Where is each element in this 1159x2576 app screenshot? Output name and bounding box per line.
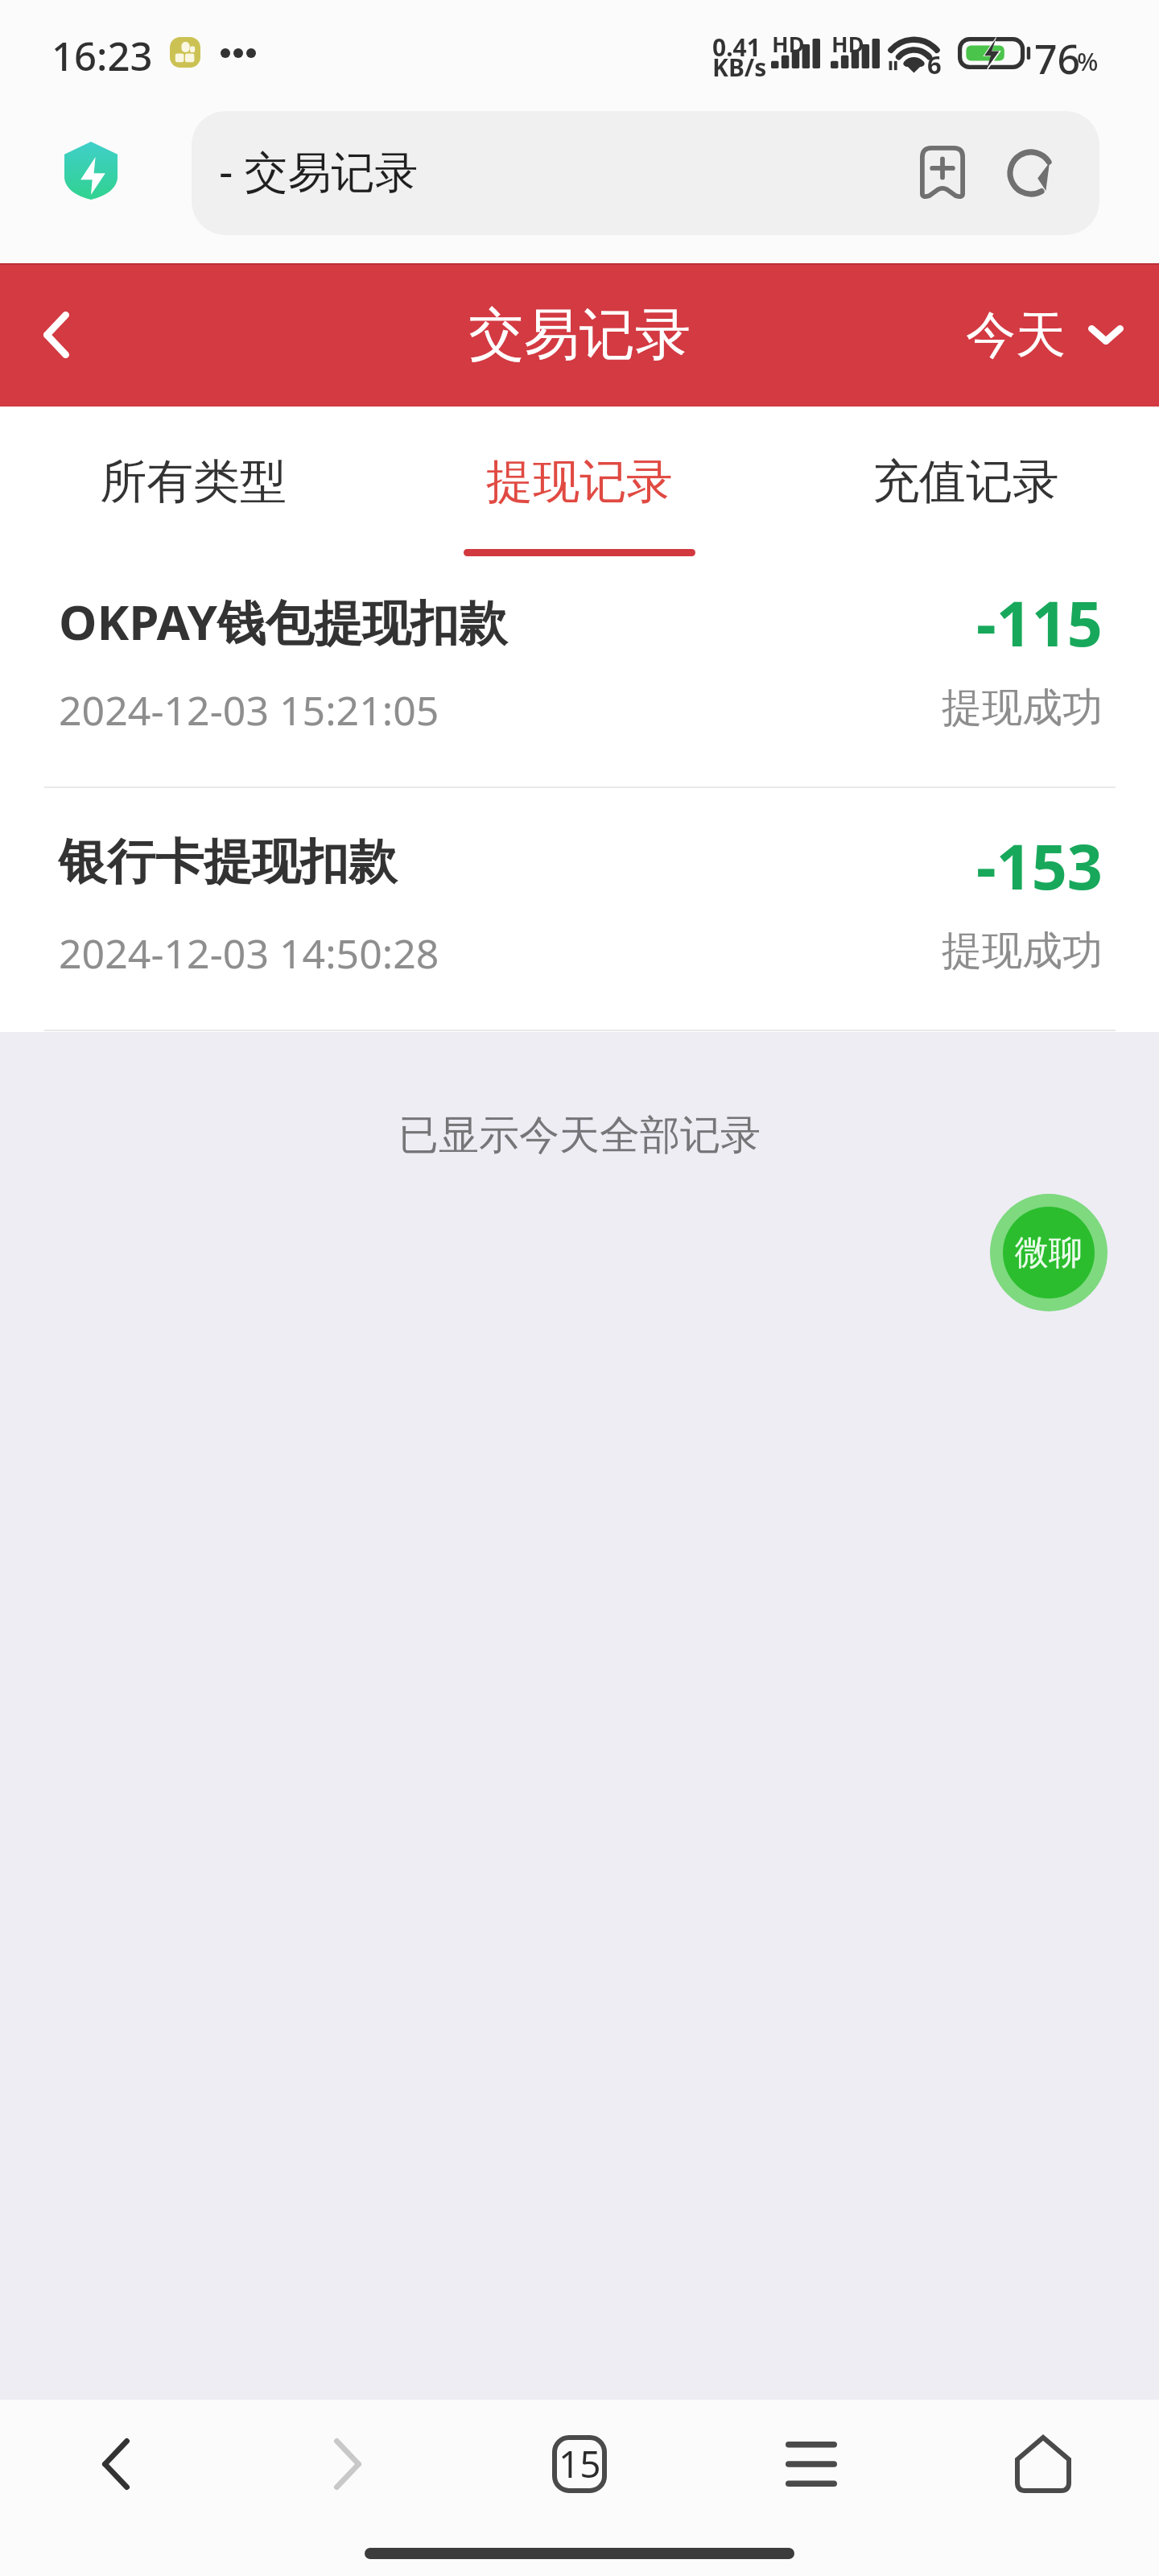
- staticText: 6: [927, 47, 942, 81]
- button[interactable]: 所有类型: [0, 407, 386, 544]
- staticText: 16:23: [52, 29, 153, 83]
- button[interactable]: 今天: [966, 263, 1124, 407]
- staticText: -115: [976, 580, 1103, 665]
- staticText: 2024-12-03 15:21:05: [59, 683, 439, 737]
- staticText: 提现成功: [942, 683, 1103, 733]
- staticText: 所有类型: [100, 452, 287, 511]
- staticText: 提现成功: [942, 926, 1103, 976]
- staticText: - 交易记录: [219, 141, 419, 200]
- button[interactable]: Menu: [695, 2400, 927, 2529]
- button[interactable]: - 交易记录: [192, 111, 1099, 235]
- staticText: 充值记录: [872, 452, 1059, 511]
- button[interactable]: 微聊: [990, 1194, 1107, 1311]
- button[interactable]: 银行卡提现扣款: [0, 787, 1159, 1030]
- button[interactable]: Refresh: [995, 137, 1067, 209]
- staticText: -153: [976, 824, 1103, 908]
- staticText: OKPAY钱包提现扣款: [59, 588, 508, 654]
- staticText: 已显示今天全部记录: [0, 1110, 1159, 1161]
- button[interactable]: Back: [0, 263, 113, 407]
- button[interactable]: Back: [0, 2400, 232, 2529]
- button[interactable]: 充值记录: [773, 407, 1159, 544]
- staticText: 交易记录: [468, 300, 691, 370]
- staticText: 今天: [966, 303, 1066, 366]
- button[interactable]: Add bookmark: [906, 137, 979, 209]
- staticText: %: [1077, 44, 1099, 78]
- button[interactable]: Tabs: [464, 2400, 695, 2529]
- staticText: 15: [559, 2438, 601, 2489]
- staticText: 0.41: [712, 31, 761, 64]
- staticText: KB/s: [712, 51, 767, 84]
- button[interactable]: Forward: [232, 2400, 464, 2529]
- button[interactable]: 提现记录: [386, 407, 773, 544]
- staticText: 微聊: [1015, 1232, 1083, 1274]
- staticText: 提现记录: [486, 452, 673, 511]
- staticText: 银行卡提现扣款: [59, 832, 397, 893]
- staticText: 2024-12-03 14:50:28: [59, 926, 439, 980]
- button[interactable]: OKPAY钱包提现扣款: [0, 544, 1159, 787]
- staticText: 76: [1034, 31, 1081, 86]
- staticText: HD: [831, 29, 864, 59]
- staticText: HD: [772, 29, 805, 59]
- button[interactable]: Home: [927, 2400, 1159, 2529]
